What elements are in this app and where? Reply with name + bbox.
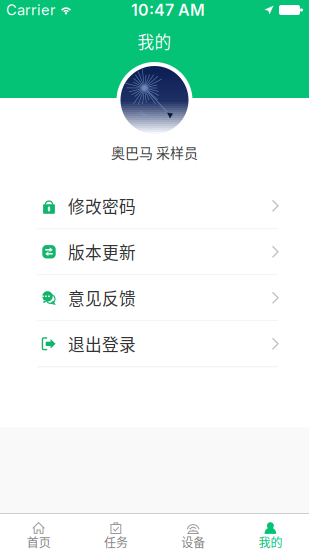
- staticText: 退出登录: [68, 332, 136, 356]
- staticText: 设备: [181, 533, 205, 550]
- button[interactable]: 意见反馈: [0, 275, 309, 321]
- button[interactable]: 设备: [154, 513, 232, 550]
- button[interactable]: 首页: [0, 513, 77, 550]
- staticText: 版本更新: [68, 240, 136, 264]
- button[interactable]: 任务: [77, 513, 154, 550]
- button[interactable]: 修改密码: [0, 183, 309, 229]
- staticText: 任务: [104, 533, 128, 550]
- staticText: Carrier: [6, 1, 56, 19]
- staticText: 修改密码: [68, 194, 136, 218]
- staticText: 10:47 AM: [131, 0, 205, 20]
- staticText: 我的: [258, 533, 282, 550]
- button[interactable]: 版本更新: [0, 229, 309, 275]
- staticText: 意见反馈: [68, 286, 136, 310]
- button[interactable]: 退出登录: [0, 321, 309, 367]
- staticText: 奥巴马 采样员: [111, 142, 198, 162]
- staticText: 首页: [27, 533, 51, 550]
- staticText: 我的: [137, 29, 171, 53]
- button[interactable]: 我的: [232, 513, 309, 550]
